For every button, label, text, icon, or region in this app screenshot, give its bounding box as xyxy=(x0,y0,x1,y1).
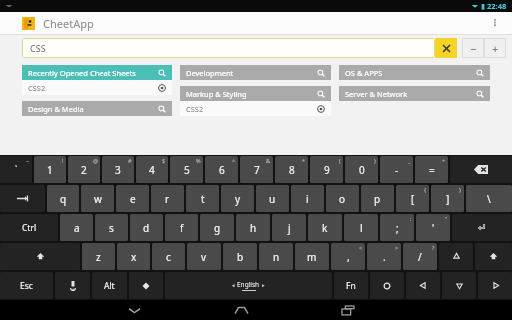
button[interactable]: 0 xyxy=(345,156,378,183)
button[interactable]: diamond xyxy=(129,272,163,299)
button[interactable]: 2 xyxy=(68,156,100,183)
button[interactable]: 9 xyxy=(310,156,343,183)
button[interactable]: y xyxy=(221,185,254,212)
button[interactable]: enter xyxy=(452,214,512,241)
button[interactable]: 7 xyxy=(240,156,273,183)
button[interactable]: right xyxy=(478,272,512,299)
button[interactable]: p xyxy=(361,185,394,212)
button[interactable]: CSS xyxy=(22,38,435,58)
button[interactable]: f xyxy=(165,214,198,241)
staticText: ( xyxy=(339,157,341,164)
staticText: Markup & Styling xyxy=(186,89,247,99)
button[interactable]: Development xyxy=(180,65,331,80)
button[interactable]: Ctrl xyxy=(0,214,58,241)
button[interactable]: ' xyxy=(416,214,450,241)
button[interactable]: w xyxy=(81,185,114,212)
button[interactable]: down xyxy=(442,272,476,299)
button[interactable]: Fn xyxy=(334,272,368,299)
button[interactable]: o xyxy=(326,185,359,212)
button[interactable]: Clear search xyxy=(435,38,457,58)
button[interactable]: l xyxy=(344,214,378,241)
button[interactable]: Back xyxy=(117,300,151,320)
button[interactable]: j xyxy=(272,214,306,241)
button[interactable]: ; xyxy=(380,214,414,241)
staticText: 22:48 xyxy=(487,1,507,11)
button[interactable]: q xyxy=(47,185,79,212)
button[interactable]: space xyxy=(165,272,332,299)
button[interactable]: b xyxy=(223,243,257,270)
button[interactable]: Esc xyxy=(0,272,53,299)
button[interactable]: t xyxy=(186,185,219,212)
staticText: g xyxy=(214,221,221,235)
button[interactable]: 8 xyxy=(275,156,308,183)
staticText: ◂ xyxy=(232,282,235,288)
button[interactable]: 6 xyxy=(205,156,238,183)
button[interactable]: Alt xyxy=(92,272,127,299)
button[interactable]: Recently Opened Cheat Sheets xyxy=(22,65,172,80)
button[interactable]: shift xyxy=(0,243,80,270)
button[interactable]: n xyxy=(259,243,293,270)
button[interactable]: CSS2 xyxy=(180,101,331,116)
button[interactable]: OS & APPS xyxy=(339,65,490,80)
staticText: p xyxy=(374,192,381,206)
button[interactable]: m xyxy=(295,243,329,270)
button[interactable]: left xyxy=(406,272,440,299)
button[interactable]: tab xyxy=(0,185,45,212)
button[interactable]: u xyxy=(256,185,289,212)
button[interactable]: \ xyxy=(466,185,512,212)
button[interactable]: . xyxy=(367,243,401,270)
staticText: { xyxy=(424,186,427,193)
button[interactable]: - xyxy=(380,156,413,183)
button[interactable]: 3 xyxy=(102,156,134,183)
staticText: CSS xyxy=(30,42,46,54)
button[interactable]: c xyxy=(152,243,185,270)
button[interactable]: r xyxy=(151,185,184,212)
button[interactable]: 5 xyxy=(170,156,203,183)
staticText: m xyxy=(307,250,317,264)
button[interactable]: CSS2 xyxy=(22,80,172,95)
button[interactable]: 4 xyxy=(136,156,168,183)
button[interactable]: 1 xyxy=(34,156,66,183)
button[interactable]: v xyxy=(187,243,221,270)
button[interactable]: Increase xyxy=(484,38,506,58)
button[interactable]: shift xyxy=(475,243,512,270)
button[interactable]: = xyxy=(415,156,448,183)
staticText: - xyxy=(395,163,399,177)
button[interactable]: ` xyxy=(0,156,32,183)
button[interactable]: ] xyxy=(431,185,464,212)
button[interactable]: / xyxy=(403,243,437,270)
staticText: l xyxy=(360,221,363,235)
staticText: d xyxy=(143,221,150,235)
button[interactable]: mic xyxy=(55,272,90,299)
button[interactable]: k xyxy=(308,214,342,241)
staticText: Development xyxy=(186,68,234,78)
button[interactable]: i xyxy=(291,185,324,212)
button[interactable]: Design & Media xyxy=(22,101,172,116)
staticText: f xyxy=(180,221,184,235)
button[interactable]: bksp xyxy=(450,156,512,183)
button[interactable]: , xyxy=(331,243,365,270)
button[interactable]: Server & Network xyxy=(339,86,490,101)
button[interactable]: Overflow menu xyxy=(486,14,504,32)
button[interactable]: e xyxy=(116,185,149,212)
staticText: b xyxy=(237,250,244,264)
staticText: 0 xyxy=(359,163,365,177)
button[interactable]: Markup & Styling xyxy=(180,86,331,101)
staticText: [ xyxy=(411,192,415,206)
button[interactable]: g xyxy=(200,214,234,241)
button[interactable]: Decrease xyxy=(462,38,484,58)
staticText: } xyxy=(459,186,462,193)
button[interactable]: d xyxy=(130,214,163,241)
button[interactable]: Recent apps xyxy=(331,300,365,320)
button[interactable]: [ xyxy=(396,185,429,212)
button[interactable]: x xyxy=(117,243,150,270)
button[interactable]: h xyxy=(236,214,270,241)
button[interactable]: Home xyxy=(224,300,258,320)
staticText: _ xyxy=(408,157,411,164)
button[interactable]: s xyxy=(95,214,128,241)
button[interactable]: a xyxy=(60,214,93,241)
button[interactable]: z xyxy=(82,243,115,270)
button[interactable]: circle xyxy=(370,272,404,299)
staticText: y xyxy=(235,192,241,206)
button[interactable]: up xyxy=(439,243,473,270)
